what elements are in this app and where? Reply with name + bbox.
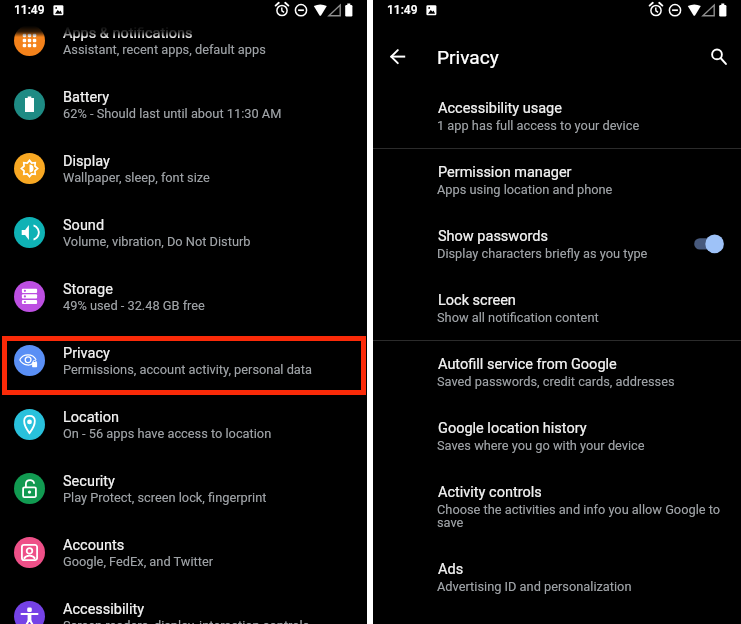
staticText: 62% - Should last until about 11:30 AM [63, 106, 282, 121]
staticText: Permission manager [438, 164, 572, 181]
staticText: Activity controls [438, 484, 542, 501]
button[interactable]: Apps & notifications [0, 13, 367, 77]
staticText: Storage [63, 281, 113, 298]
button[interactable]: Activity controls [373, 473, 741, 551]
button[interactable]: Show passwords toggle [685, 217, 733, 257]
button[interactable]: Lock screen [373, 281, 741, 345]
staticText: Privacy [437, 46, 499, 68]
staticText: Apps & notifications [63, 25, 193, 42]
staticText: Accounts [63, 537, 125, 554]
staticText: Wallpaper, sleep, font size [63, 170, 210, 185]
staticText: Battery [63, 89, 109, 106]
staticText: Show passwords [438, 228, 548, 245]
staticText: On - 56 apps have access to location [63, 426, 272, 441]
staticText: Screen readers, display, interaction con… [63, 618, 310, 624]
staticText: Assistant, recent apps, default apps [63, 42, 266, 57]
staticText: 11:49 [387, 3, 418, 17]
staticText: Autofill service from Google [438, 356, 617, 373]
button[interactable]: Autofill service from Google [373, 345, 741, 409]
button[interactable]: Search [699, 38, 735, 74]
button[interactable]: Accessibility [0, 589, 367, 624]
button[interactable]: Location [0, 397, 367, 461]
button[interactable]: Accounts [0, 525, 367, 589]
button[interactable]: Security [0, 461, 367, 525]
staticText: Display [63, 153, 110, 170]
button[interactable]: Sound [0, 205, 367, 269]
staticText: 49% used - 32.48 GB free [63, 298, 205, 313]
staticText: 11:49 [14, 3, 45, 17]
button[interactable]: Storage [0, 269, 367, 333]
staticText: Choose the activities and info you allow… [437, 502, 721, 530]
staticText: Permissions, account activity, personal … [63, 362, 312, 377]
staticText: Google location history [438, 420, 587, 437]
staticText: Apps using location and phone [437, 182, 737, 197]
staticText: Location [63, 409, 120, 426]
button[interactable]: Google location history [373, 409, 741, 473]
staticText: Accessibility [63, 601, 145, 618]
button[interactable]: Privacy [0, 333, 367, 397]
staticText: Advertising ID and personalization [437, 579, 737, 594]
staticText: Play Protect, screen lock, fingerprint [63, 490, 267, 505]
button[interactable]: Battery [0, 77, 367, 141]
staticText: Ads [438, 561, 464, 578]
staticText: Security [63, 473, 115, 490]
staticText: 1 app has full access to your device [437, 118, 737, 133]
staticText: Lock screen [438, 292, 516, 309]
staticText: Privacy [63, 345, 110, 362]
staticText: Accessibility usage [438, 100, 562, 117]
staticText: Saves where you go with your device [437, 438, 737, 453]
button[interactable]: Ads [373, 550, 741, 614]
staticText: Volume, vibration, Do Not Disturb [63, 234, 251, 249]
button[interactable]: Permission manager [373, 153, 741, 217]
staticText: Show all notification content [437, 310, 737, 325]
button[interactable]: Back [385, 39, 419, 73]
staticText: Sound [63, 217, 105, 234]
button[interactable]: Show passwords [373, 217, 741, 281]
staticText: Google, FedEx, and Twitter [63, 554, 214, 569]
staticText: Saved passwords, credit cards, addresses [437, 374, 737, 389]
button[interactable]: Display [0, 141, 367, 205]
button[interactable]: Accessibility usage [373, 89, 741, 153]
staticText: Display characters briefly as you type [437, 246, 737, 261]
